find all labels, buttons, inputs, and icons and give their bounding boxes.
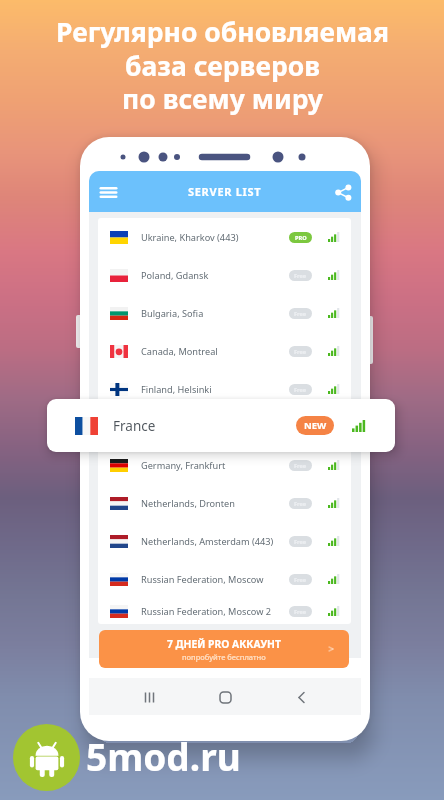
staticText: Finland, Helsinki xyxy=(141,383,212,396)
staticText: 7 ДНЕЙ PRO АККАУНТ xyxy=(167,637,281,651)
staticText: Free xyxy=(294,310,307,318)
staticText: попробуйте бесплатно xyxy=(182,652,266,662)
staticText: PRO xyxy=(295,234,307,242)
button[interactable]: Germany, Frankfurt xyxy=(98,446,351,484)
button[interactable]: Bulgaria, Sofia xyxy=(98,294,351,332)
staticText: Free xyxy=(294,272,307,280)
button[interactable]: Back xyxy=(285,681,317,713)
button[interactable]: Netherlands, Amsterdam (443) xyxy=(98,522,351,560)
staticText: Canada, Montreal xyxy=(141,345,218,358)
button[interactable]: Canada, Montreal xyxy=(98,332,351,370)
button[interactable]: Netherlands, Dronten xyxy=(98,484,351,522)
staticText: Free xyxy=(294,576,307,584)
button[interactable]: Ukraine, Kharkov (443) xyxy=(98,218,351,256)
staticText: Russian Federation, Moscow xyxy=(141,573,264,586)
staticText: Germany, Frankfurt xyxy=(141,459,226,472)
button[interactable]: Russian Federation, Moscow xyxy=(98,560,351,598)
button[interactable]: Poland, Gdansk xyxy=(98,256,351,294)
button[interactable]: Finland, Helsinki xyxy=(98,370,351,408)
staticText: Netherlands, Amsterdam (443) xyxy=(141,535,274,548)
staticText: 5mod.ru xyxy=(86,731,241,781)
staticText: Netherlands, Dronten xyxy=(141,497,235,510)
staticText: Ukraine, Kharkov (443) xyxy=(141,231,239,244)
staticText: Free xyxy=(294,608,307,616)
button[interactable]: Home xyxy=(209,681,241,713)
staticText: Russian Federation, Moscow 2 xyxy=(141,605,272,618)
button[interactable]: Share xyxy=(329,178,357,206)
staticText: SERVER LIST xyxy=(188,184,262,199)
button[interactable]: Menu xyxy=(94,178,122,206)
staticText: Free xyxy=(294,348,307,356)
staticText: Регулярно обновляемая база серверов по в… xyxy=(56,14,389,117)
button[interactable]: Recents xyxy=(133,681,165,713)
button[interactable]: France xyxy=(47,399,395,452)
staticText: Free xyxy=(294,500,307,508)
staticText: France xyxy=(113,417,156,435)
staticText: Bulgaria, Sofia xyxy=(141,307,204,320)
staticText: Poland, Gdansk xyxy=(141,269,209,282)
button[interactable]: Russian Federation, Moscow 2 xyxy=(98,598,351,624)
staticText: Free xyxy=(294,538,307,546)
staticText: NEW xyxy=(304,419,327,432)
button[interactable]: 7 ДНЕЙ PRO АККАУНТ xyxy=(99,630,349,668)
staticText: Free xyxy=(294,386,307,394)
staticText: Free xyxy=(294,462,307,470)
